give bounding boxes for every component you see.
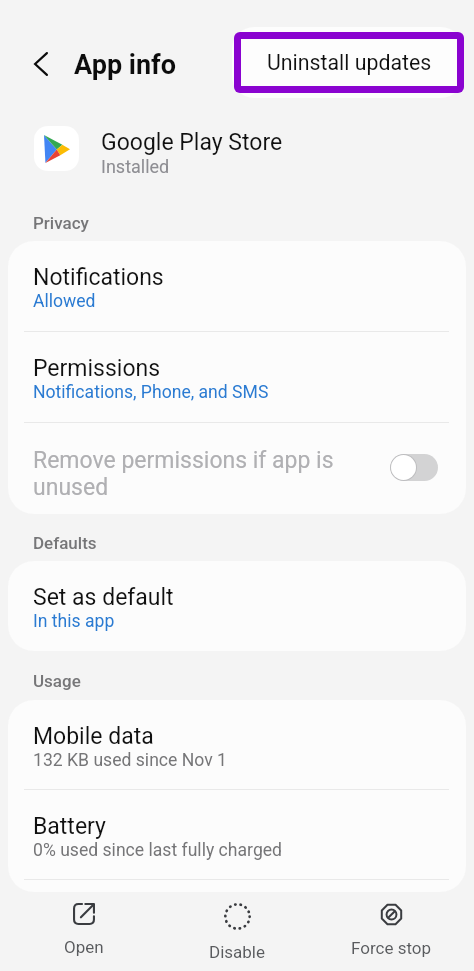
staticText: Notifications, Phone, and SMS — [33, 382, 269, 403]
staticText: Installed — [101, 156, 170, 176]
staticText: 132 KB used since Nov 1 — [33, 750, 227, 771]
staticText: Defaults — [33, 533, 97, 553]
staticText: Open — [64, 937, 104, 957]
button[interactable]: Mobile data — [8, 700, 466, 789]
staticText: Allowed — [33, 291, 96, 312]
staticText: 0% used since last fully charged — [33, 840, 283, 861]
staticText: App info — [74, 49, 176, 81]
staticText: Usage — [33, 671, 81, 691]
button[interactable]: Force stop — [321, 893, 461, 958]
staticText: Notifications — [33, 264, 164, 291]
staticText: Remove permissions if app is unused — [33, 447, 343, 501]
button[interactable]: Google Play Store — [0, 110, 474, 172]
staticText: Battery — [33, 813, 106, 840]
staticText: Force stop — [351, 938, 432, 958]
button[interactable]: Permissions — [8, 332, 466, 422]
button[interactable]: Remove permissions if app is unused — [8, 423, 466, 514]
staticText: Permissions — [33, 355, 161, 382]
button[interactable]: Back — [23, 46, 59, 82]
button[interactable]: Set as default — [8, 561, 466, 651]
staticText: Mobile data — [33, 723, 154, 750]
button[interactable]: Open — [14, 893, 154, 957]
button[interactable]: Remove permissions if app is unused togg… — [390, 454, 438, 481]
staticText: Disable — [209, 942, 266, 962]
staticText: Privacy — [33, 213, 89, 233]
staticText: Uninstall updates — [267, 50, 432, 75]
staticText: In this app — [33, 611, 115, 632]
staticText: Google Play Store — [101, 129, 283, 156]
button[interactable]: Notifications — [8, 241, 466, 331]
button[interactable]: Disable — [167, 893, 307, 962]
button[interactable]: Battery — [8, 790, 466, 879]
button[interactable]: Uninstall updates — [241, 39, 457, 86]
staticText: Set as default — [33, 584, 174, 611]
